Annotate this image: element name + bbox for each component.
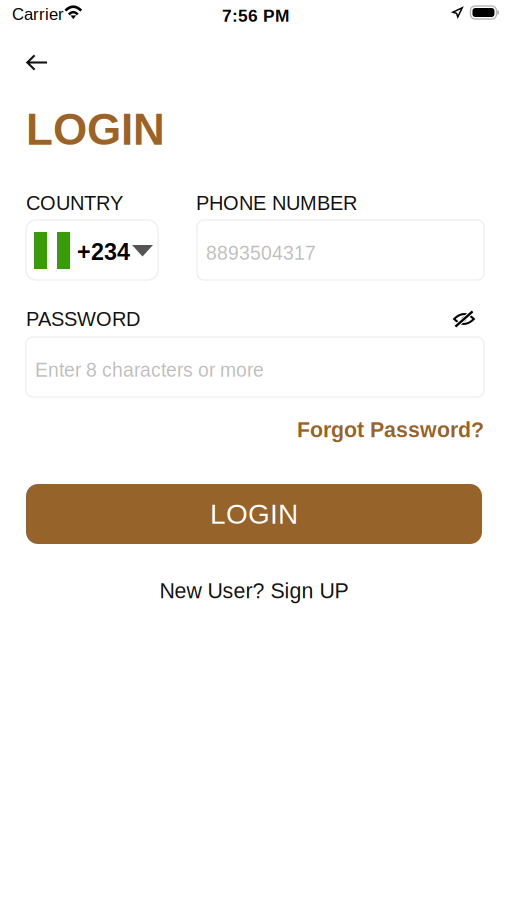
button[interactable]: Show password bbox=[448, 303, 480, 335]
staticText: COUNTRY bbox=[26, 192, 123, 214]
staticText: New User? Sign UP bbox=[159, 579, 348, 603]
staticText: +234 bbox=[77, 239, 130, 265]
button[interactable]: Enter 8 characters or more bbox=[26, 337, 484, 397]
button[interactable]: 8893504317 bbox=[197, 220, 484, 280]
staticText: LOGIN bbox=[26, 105, 165, 154]
button[interactable]: LOGIN bbox=[26, 484, 482, 544]
staticText: PASSWORD bbox=[26, 308, 140, 330]
button[interactable]: Forgot Password? bbox=[26, 413, 484, 447]
button[interactable]: New User? Sign UP bbox=[26, 574, 482, 608]
button[interactable]: Country code +234 bbox=[26, 220, 158, 280]
staticText: 7:56 PM bbox=[222, 6, 289, 25]
staticText: LOGIN bbox=[210, 498, 298, 530]
staticText: Forgot Password? bbox=[297, 418, 484, 442]
staticText: Enter 8 characters or more bbox=[35, 359, 264, 381]
staticText: PHONE NUMBER bbox=[196, 192, 357, 214]
staticText: Carrier bbox=[12, 5, 64, 24]
staticText: 8893504317 bbox=[206, 242, 316, 264]
button[interactable]: Back bbox=[14, 44, 60, 81]
